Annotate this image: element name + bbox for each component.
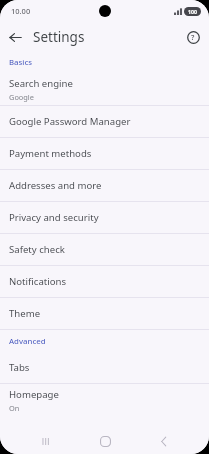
staticText: Privacy and security xyxy=(9,211,99,224)
staticText: Safety check xyxy=(9,243,65,256)
button[interactable]: Payment methods xyxy=(0,138,209,169)
staticText: Google xyxy=(9,92,34,102)
button[interactable]: Recent apps xyxy=(30,429,60,453)
button[interactable]: Homepage xyxy=(0,384,209,416)
staticText: Tabs xyxy=(9,361,30,374)
staticText: Basics xyxy=(9,57,33,68)
staticText: Homepage xyxy=(9,388,59,401)
staticText: Notifications xyxy=(9,275,67,288)
button[interactable]: Search engine xyxy=(0,73,209,105)
staticText: Advanced xyxy=(9,336,46,347)
staticText: 100 xyxy=(188,8,197,15)
button[interactable]: Help xyxy=(183,27,203,47)
staticText: 10.00 xyxy=(11,6,31,16)
staticText: ? xyxy=(191,32,195,42)
staticText: Settings xyxy=(33,28,85,46)
button[interactable]: Tabs xyxy=(0,352,209,383)
button[interactable]: Notifications xyxy=(0,266,209,297)
button[interactable]: Navigate up xyxy=(4,26,26,48)
staticText: Search engine xyxy=(9,77,73,90)
staticText: Addresses and more xyxy=(9,179,102,192)
staticText: Theme xyxy=(9,307,41,320)
staticText: Google Password Manager xyxy=(9,115,131,128)
button[interactable]: Theme xyxy=(0,298,209,329)
button[interactable]: Safety check xyxy=(0,234,209,265)
staticText: Payment methods xyxy=(9,147,92,160)
staticText: On xyxy=(9,403,20,413)
button[interactable]: Privacy and security xyxy=(0,202,209,233)
button[interactable]: Back xyxy=(149,429,179,453)
button[interactable]: Google Password Manager xyxy=(0,106,209,137)
button[interactable]: Addresses and more xyxy=(0,170,209,201)
button[interactable]: Home xyxy=(90,429,120,453)
